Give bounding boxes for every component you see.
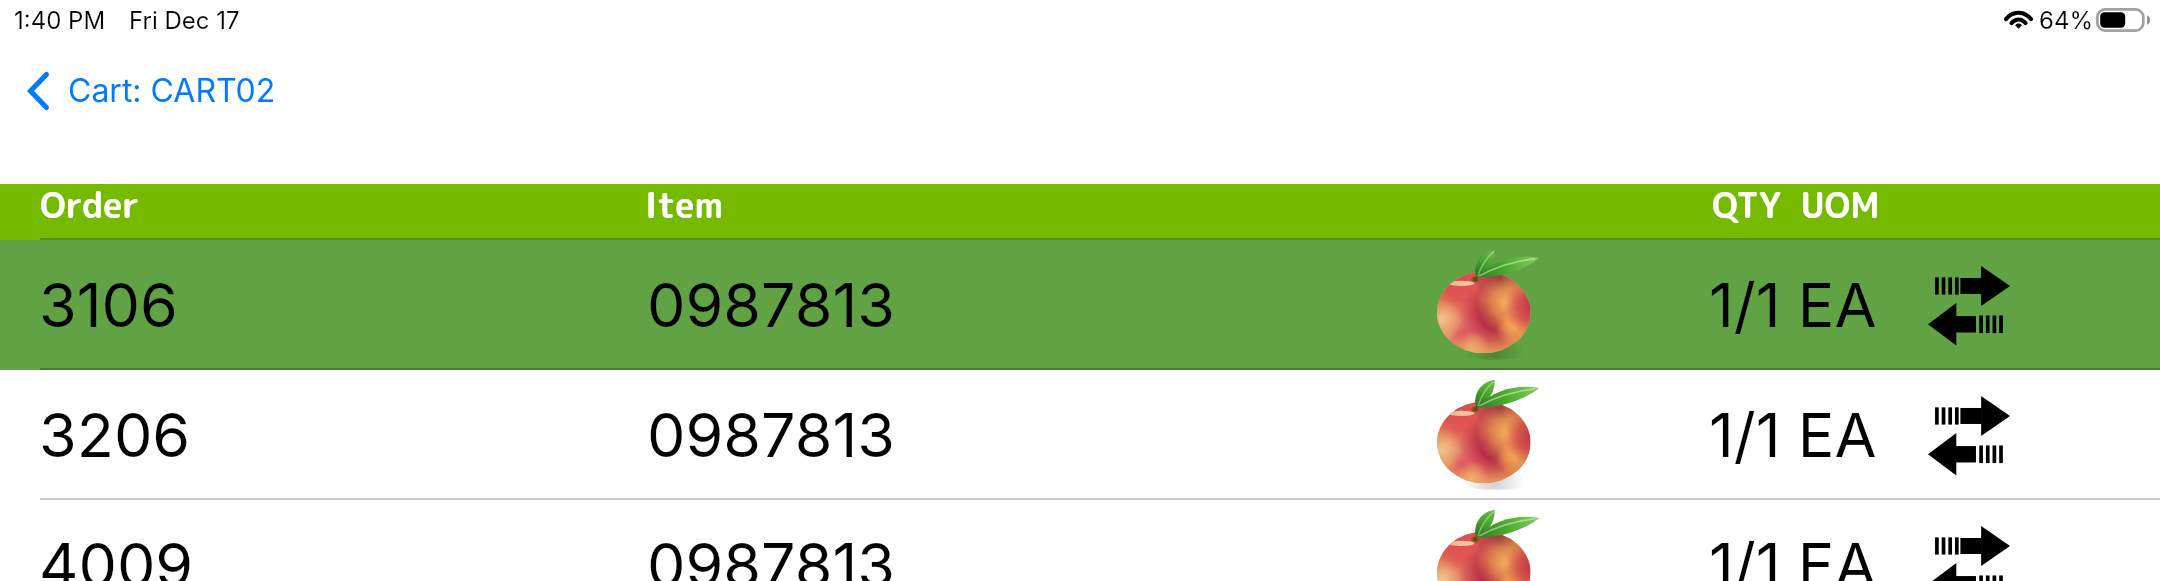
staticText: 0987813 bbox=[647, 398, 895, 472]
staticText: 0987813 bbox=[647, 528, 895, 581]
staticText: 1:40 PM bbox=[14, 6, 106, 35]
staticText: 1/1 EA bbox=[1709, 268, 1877, 342]
staticText: QTY UOM bbox=[1712, 180, 1880, 229]
staticText: Order bbox=[40, 180, 140, 229]
other: Transfer item bbox=[1928, 264, 2010, 346]
staticText: Item bbox=[645, 180, 724, 229]
button[interactable]: Cart: CART02 bbox=[0, 55, 296, 110]
staticText: 4009 bbox=[39, 528, 194, 581]
button[interactable]: 3206 bbox=[0, 370, 2160, 500]
staticText: 64% bbox=[2039, 6, 2093, 35]
staticText: 3106 bbox=[39, 268, 178, 342]
staticText: 1/1 EA bbox=[1709, 398, 1877, 472]
other: Transfer item bbox=[1928, 524, 2010, 581]
staticText: 3206 bbox=[39, 398, 191, 472]
staticText: 1/1 EA bbox=[1709, 528, 1877, 581]
button[interactable]: 3106 bbox=[0, 240, 2160, 370]
button[interactable]: 4009 bbox=[0, 500, 2160, 581]
staticText: 0987813 bbox=[647, 268, 895, 342]
staticText: Fri Dec 17 bbox=[129, 6, 240, 35]
staticText: Cart: CART02 bbox=[68, 71, 276, 110]
other: Transfer item bbox=[1928, 394, 2010, 476]
